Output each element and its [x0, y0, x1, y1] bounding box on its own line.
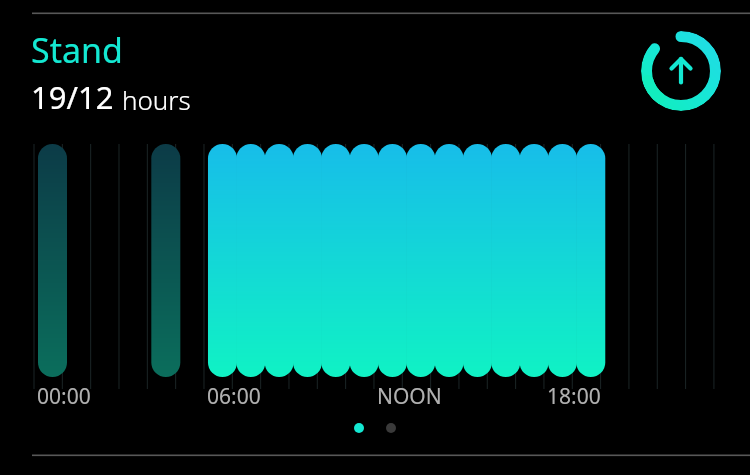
staticText: NOON: [377, 382, 442, 411]
button[interactable]: Stand goal progress: [641, 31, 721, 111]
button[interactable]: Stand hours chart: [0, 0, 750, 475]
staticText: 06:00: [207, 382, 261, 411]
staticText: 00:00: [37, 382, 91, 411]
staticText: 19/12: [31, 76, 114, 118]
staticText: hours: [122, 82, 191, 117]
staticText: 18:00: [547, 382, 601, 411]
staticText: Stand: [31, 27, 123, 73]
